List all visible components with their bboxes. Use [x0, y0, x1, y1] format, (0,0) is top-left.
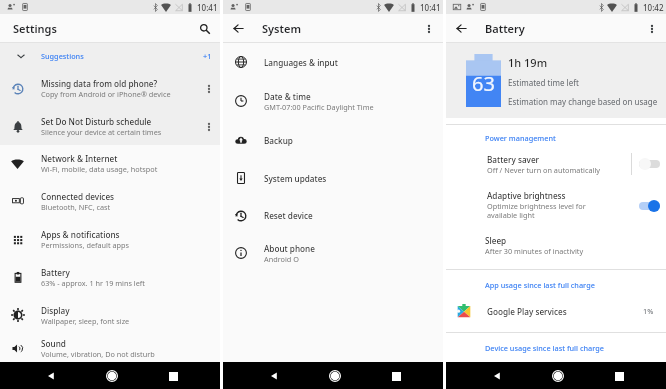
staticText: Reset device: [264, 210, 313, 221]
staticText: After 30 minutes of inactivity: [485, 246, 584, 256]
button[interactable]: Search: [192, 16, 218, 42]
button[interactable]: Navigate up: [223, 14, 253, 43]
staticText: +1: [203, 51, 212, 61]
staticText: Copy from Android or iPhone® device: [41, 89, 171, 99]
staticText: Network & Internet: [41, 153, 118, 164]
button[interactable]: Recents: [608, 365, 630, 387]
staticText: Battery saver: [487, 154, 540, 165]
button[interactable]: Recents: [385, 365, 407, 387]
staticText: Set Do Not Disturb schedule: [41, 116, 152, 127]
staticText: 10:42: [643, 2, 664, 13]
staticText: Off / Never turn on automatically: [487, 165, 601, 175]
button[interactable]: Sleep: [446, 235, 666, 256]
staticText: Missing data from old phone?: [41, 78, 158, 89]
button[interactable]: Back: [486, 365, 508, 387]
button[interactable]: Languages & input: [223, 43, 443, 81]
button[interactable]: Suggestions: [0, 43, 220, 69]
staticText: Adaptive brightness: [487, 190, 566, 201]
button[interactable]: Back: [263, 365, 285, 387]
button[interactable]: More options: [417, 17, 441, 41]
staticText: Sleep: [485, 235, 507, 246]
button[interactable]: Device usage since last full charge: [446, 343, 666, 353]
staticText: Volume, vibration, Do not disturb: [41, 349, 155, 359]
button[interactable]: Recents: [162, 365, 184, 387]
staticText: 10:41: [197, 2, 218, 13]
button[interactable]: Backup: [223, 121, 443, 159]
button[interactable]: Home: [547, 365, 569, 387]
staticText: Connected devices: [41, 191, 115, 202]
button[interactable]: Display: [0, 296, 220, 334]
staticText: Permissions, default apps: [41, 240, 130, 250]
staticText: Optimize brightness level for available …: [487, 201, 586, 221]
staticText: Battery: [485, 21, 525, 36]
staticText: Android O: [264, 254, 299, 264]
button[interactable]: More options: [198, 108, 220, 145]
staticText: Google Play services: [487, 306, 567, 317]
staticText: Bluetooth, NFC, cast: [41, 202, 111, 212]
button[interactable]: More options: [640, 17, 664, 41]
button[interactable]: About phone: [223, 234, 443, 272]
staticText: 1%: [643, 306, 654, 316]
staticText: App usage since last full charge: [485, 280, 595, 290]
button[interactable]: Apps & notifications: [0, 220, 220, 258]
staticText: Sound: [41, 338, 66, 349]
staticText: System: [262, 21, 301, 36]
staticText: Languages & input: [264, 57, 338, 68]
staticText: Estimation may change based on usage: [508, 96, 658, 107]
staticText: Wallpaper, sleep, font size: [41, 316, 130, 326]
staticText: About phone: [264, 243, 315, 254]
staticText: 63: [472, 70, 495, 97]
button[interactable]: App usage since last full charge: [446, 280, 666, 290]
button[interactable]: Network & Internet: [0, 145, 220, 182]
staticText: GMT-07:00 Pacific Daylight Time: [264, 102, 374, 112]
staticText: 10:41: [420, 2, 441, 13]
staticText: Battery: [41, 267, 70, 278]
staticText: Wi-Fi, mobile, data usage, hotspot: [41, 164, 158, 174]
staticText: Date & time: [264, 91, 311, 102]
button[interactable]: Set Do Not Disturb schedule: [0, 108, 220, 145]
button[interactable]: Adaptive brightness: [446, 190, 666, 221]
staticText: Power management: [485, 133, 556, 143]
button[interactable]: Navigate up: [446, 14, 476, 43]
staticText: System updates: [264, 173, 327, 184]
button[interactable]: Google Play services: [446, 299, 666, 323]
button[interactable]: Connected devices: [0, 182, 220, 220]
button[interactable]: More options: [198, 69, 220, 108]
button[interactable]: Battery saver: [446, 153, 666, 175]
button[interactable]: Back: [40, 365, 62, 387]
staticText: Settings: [13, 21, 57, 36]
staticText: Apps & notifications: [41, 229, 120, 240]
staticText: Estimated time left: [508, 77, 579, 88]
staticText: Device usage since last full charge: [485, 343, 604, 353]
button[interactable]: Reset device: [223, 197, 443, 234]
staticText: Display: [41, 305, 70, 316]
button[interactable]: Home: [101, 365, 123, 387]
staticText: Silence your device at certain times: [41, 127, 162, 137]
button[interactable]: Date & time: [223, 81, 443, 121]
staticText: 1h 19m: [508, 55, 548, 70]
button[interactable]: Battery: [0, 258, 220, 296]
staticText: Backup: [264, 135, 293, 146]
staticText: 63% - approx. 1 hr 19 mins left: [41, 278, 145, 288]
staticText: Suggestions: [41, 51, 84, 61]
button[interactable]: Sound: [0, 334, 220, 362]
button[interactable]: System updates: [223, 159, 443, 197]
button[interactable]: Missing data from old phone?: [0, 69, 220, 108]
button[interactable]: Home: [324, 365, 346, 387]
